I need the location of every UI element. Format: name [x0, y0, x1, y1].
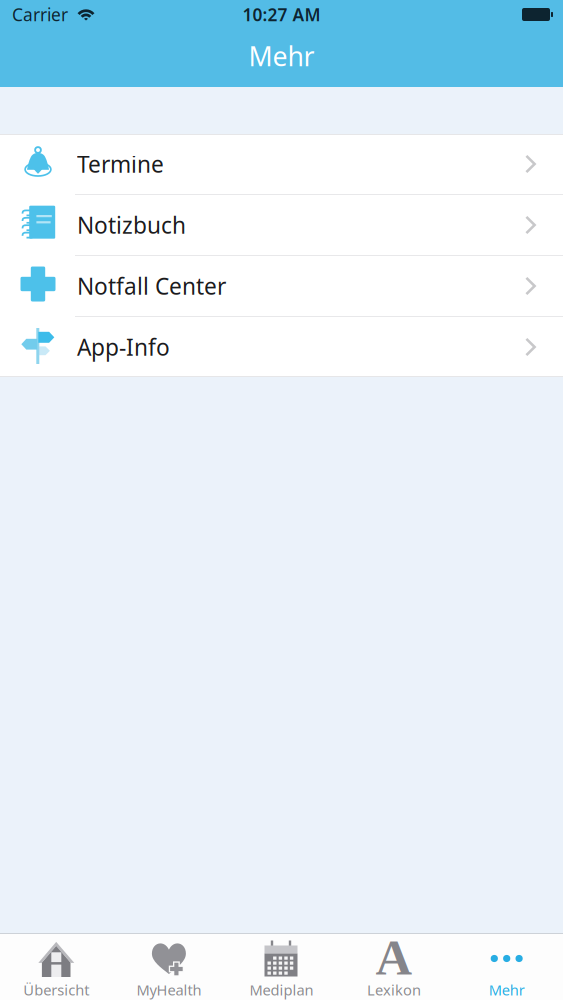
staticText: Termine	[77, 149, 164, 179]
staticText: Übersicht	[23, 980, 89, 999]
button[interactable]: Notizbuch	[0, 195, 563, 255]
staticText: Mehr	[248, 38, 314, 74]
staticText: 10:27 AM	[242, 3, 320, 26]
button[interactable]: Übersicht	[0, 934, 113, 1000]
staticText: Notizbuch	[77, 210, 186, 240]
staticText: Notfall Center	[77, 271, 226, 301]
button[interactable]: Mediplan	[225, 934, 338, 1000]
staticText: MyHealth	[136, 980, 201, 999]
button[interactable]: Notfall Center	[0, 256, 563, 316]
button[interactable]: App-Info	[0, 317, 563, 377]
staticText: Carrier	[12, 3, 68, 26]
button[interactable]: A	[338, 934, 450, 1000]
button[interactable]: MyHealth	[113, 934, 225, 1000]
staticText: Lexikon	[367, 980, 421, 999]
button[interactable]: Mehr	[450, 934, 563, 1000]
staticText: A	[376, 929, 413, 985]
staticText: Mehr	[489, 980, 525, 999]
staticText: Mediplan	[249, 980, 313, 999]
staticText: App-Info	[77, 332, 170, 362]
button[interactable]: Termine	[0, 134, 563, 194]
